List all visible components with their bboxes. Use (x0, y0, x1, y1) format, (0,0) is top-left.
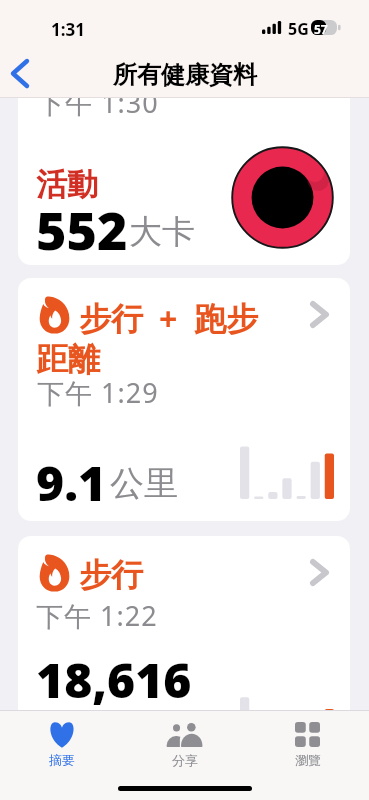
staticText: + (159, 297, 178, 341)
staticText: 公里 (110, 462, 178, 505)
staticText: 步行 (79, 299, 143, 339)
staticText: 18,616 (36, 647, 192, 712)
button[interactable]: 下午 1:30 (18, 43, 350, 265)
staticText: 57 (314, 21, 328, 37)
staticText: 5G (288, 18, 309, 40)
staticText: 大卡 (129, 211, 195, 253)
button[interactable]: 分享 (123, 711, 246, 800)
button[interactable]: 摘要 (0, 711, 123, 800)
staticText: 摘要 (49, 752, 75, 768)
staticText: 活動 (36, 165, 98, 204)
button[interactable]: Show details (300, 553, 338, 591)
staticText: 瀏覽 (295, 752, 321, 768)
staticText: 1:31 (51, 18, 85, 41)
staticText: 距離 (36, 339, 100, 379)
button[interactable]: 步行 (18, 536, 350, 779)
staticText: 9.1 (36, 450, 107, 515)
staticText: 下午 1:29 (37, 374, 159, 411)
button[interactable]: Back (2, 55, 38, 91)
staticText: 552 (36, 194, 128, 265)
staticText: 下午 1:30 (37, 84, 159, 121)
button[interactable]: 瀏覽 (246, 711, 369, 800)
button[interactable]: Show details (300, 295, 338, 333)
staticText: 步行 (79, 555, 143, 595)
staticText: 跑步 (194, 299, 258, 339)
staticText: 所有健康資料 (113, 60, 257, 90)
button[interactable]: 步行 (18, 278, 350, 521)
staticText: 分享 (172, 752, 198, 768)
staticText: 下午 1:22 (36, 597, 158, 634)
